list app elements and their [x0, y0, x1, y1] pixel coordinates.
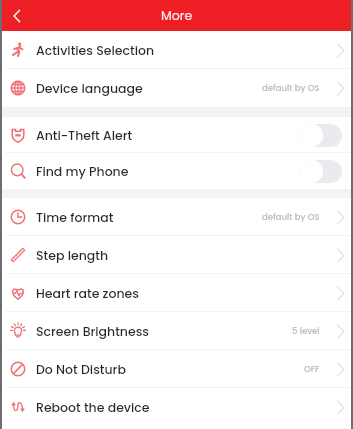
button[interactable]: Reboot the device [0, 388, 353, 426]
button[interactable]: Find my Phone [0, 153, 353, 189]
button[interactable]: Heart rate zones [0, 274, 353, 312]
staticText: Step length [36, 247, 109, 264]
staticText: default by OS [262, 211, 320, 223]
staticText: default by OS [262, 82, 320, 94]
staticText: Time format [36, 209, 114, 226]
button[interactable]: Toggle Find my Phone [300, 160, 342, 183]
button[interactable]: Back [0, 0, 34, 31]
staticText: OFF [304, 363, 320, 375]
button[interactable]: Step length [0, 236, 353, 274]
staticText: 5 level [292, 325, 320, 337]
staticText: Screen Brightness [36, 323, 150, 340]
button[interactable]: Time format [0, 198, 353, 236]
staticText: Anti-Theft Alert [36, 127, 133, 144]
button[interactable]: Screen Brightness [0, 312, 353, 350]
staticText: Activities Selection [36, 42, 155, 59]
button[interactable]: Toggle Anti-Theft Alert [300, 124, 342, 147]
button[interactable]: Activities Selection [0, 31, 353, 69]
staticText: Device language [36, 80, 143, 97]
button[interactable]: Do Not Disturb [0, 350, 353, 388]
button[interactable]: Anti-Theft Alert [0, 117, 353, 153]
staticText: More [161, 7, 193, 24]
staticText: Find my Phone [36, 163, 129, 180]
button[interactable]: Device language [0, 69, 353, 107]
staticText: Do Not Disturb [36, 361, 126, 378]
staticText: Heart rate zones [36, 285, 139, 302]
staticText: Reboot the device [36, 399, 150, 416]
